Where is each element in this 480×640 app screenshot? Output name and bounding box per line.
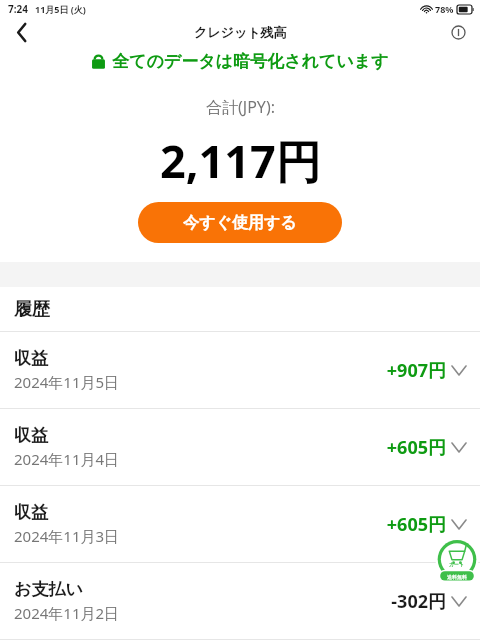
staticText: お支払い bbox=[14, 579, 83, 600]
staticText: 78% bbox=[435, 3, 454, 15]
staticText: 合計(JPY): bbox=[206, 96, 275, 118]
button[interactable]: カート bbox=[436, 538, 478, 582]
staticText: -302円 bbox=[391, 589, 446, 614]
button[interactable]: 収益 bbox=[0, 332, 480, 408]
staticText: 全てのデータは暗号化されています bbox=[112, 51, 389, 72]
button[interactable]: 収益 bbox=[0, 409, 480, 485]
staticText: 11月5日 (火) bbox=[35, 3, 86, 15]
button[interactable]: Back bbox=[0, 18, 44, 46]
staticText: 7:24 bbox=[8, 2, 28, 16]
button[interactable]: 今すぐ使用する bbox=[138, 202, 342, 243]
staticText: +605円 bbox=[386, 512, 446, 537]
staticText: カート bbox=[449, 561, 465, 567]
staticText: クレジット残高 bbox=[194, 24, 287, 40]
button[interactable]: 収益 bbox=[0, 486, 480, 562]
staticText: 2024年11月4日 bbox=[14, 449, 120, 469]
staticText: 2,117円 bbox=[160, 130, 321, 191]
staticText: 今すぐ使用する bbox=[183, 213, 297, 233]
staticText: 2024年11月5日 bbox=[14, 372, 120, 392]
staticText: 履歴 bbox=[14, 298, 50, 321]
staticText: 収益 bbox=[14, 425, 48, 446]
staticText: 2024年11月3日 bbox=[14, 526, 120, 546]
staticText: 2024年11月2日 bbox=[14, 603, 120, 623]
staticText: 収益 bbox=[14, 348, 48, 369]
staticText: +605円 bbox=[386, 435, 446, 460]
button[interactable]: Information bbox=[436, 18, 480, 46]
button[interactable]: お支払い bbox=[0, 563, 480, 639]
staticText: 送料無料 bbox=[447, 574, 467, 580]
staticText: 収益 bbox=[14, 502, 48, 523]
staticText: +907円 bbox=[386, 358, 446, 383]
